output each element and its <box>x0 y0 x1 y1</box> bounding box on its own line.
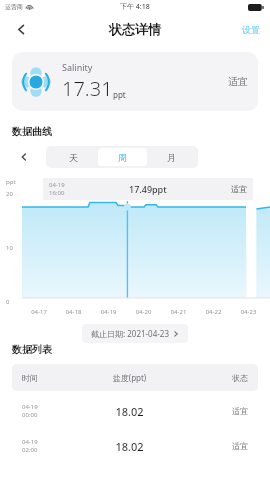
staticText: 周 <box>118 152 127 163</box>
staticText: 00:00 <box>22 411 38 419</box>
staticText: 月 <box>167 152 176 163</box>
staticText: 适宜 <box>228 75 248 88</box>
button[interactable]: 设置 <box>232 18 270 41</box>
button[interactable]: 04-19 <box>12 431 258 461</box>
staticText: 04-19 <box>22 403 38 411</box>
staticText: 状态 <box>174 373 248 383</box>
staticText: 04-19 <box>49 181 65 189</box>
button[interactable]: 周 <box>98 148 147 166</box>
staticText: 04-21 <box>161 308 196 316</box>
staticText: 04-18 <box>56 308 91 316</box>
button[interactable]: Previous <box>14 147 34 167</box>
staticText: 0 <box>6 298 10 306</box>
staticText: 04-20 <box>126 308 161 316</box>
button[interactable]: 天 <box>48 148 98 166</box>
staticText: 04-23 <box>231 308 266 316</box>
staticText: 02:00 <box>22 446 38 454</box>
button[interactable]: 04-19 <box>12 396 258 426</box>
staticText: 04-22 <box>196 308 231 316</box>
staticText: 18.02 <box>85 404 174 419</box>
button[interactable]: Back <box>10 18 32 40</box>
staticText: 时间 <box>22 373 85 383</box>
staticText: 10 <box>6 244 13 252</box>
staticText: 04-17 <box>22 308 56 316</box>
staticText: 运营商 <box>5 3 23 11</box>
staticText: Salinity <box>62 61 93 73</box>
staticText: ppt <box>6 178 16 186</box>
staticText: 18.02 <box>85 439 174 454</box>
staticText: 状态详情 <box>109 21 161 37</box>
staticText: 设置 <box>242 24 260 35</box>
staticText: 盐度(ppt) <box>85 372 174 383</box>
staticText: 04-19 <box>91 308 126 316</box>
staticText: ppt <box>113 89 126 100</box>
staticText: 截止日期: 2021-04-23 <box>91 328 169 339</box>
staticText: 适宜 <box>174 406 248 416</box>
staticText: 天 <box>69 152 78 163</box>
staticText: 17.49ppt <box>129 183 167 195</box>
staticText: 16:00 <box>49 189 65 197</box>
button[interactable]: 截止日期: 2021-04-23 <box>82 324 188 343</box>
staticText: 17.31 <box>62 75 113 102</box>
staticText: 20 <box>6 190 13 198</box>
staticText: 04-19 <box>22 438 38 446</box>
staticText: 数据曲线 <box>12 125 52 138</box>
staticText: 数据列表 <box>12 343 52 356</box>
button[interactable]: Salinity <box>12 52 258 111</box>
staticText: 适宜 <box>174 441 248 451</box>
button[interactable]: 月 <box>147 148 196 166</box>
staticText: 适宜 <box>231 184 247 194</box>
staticText: 下午 4:18 <box>120 2 150 12</box>
